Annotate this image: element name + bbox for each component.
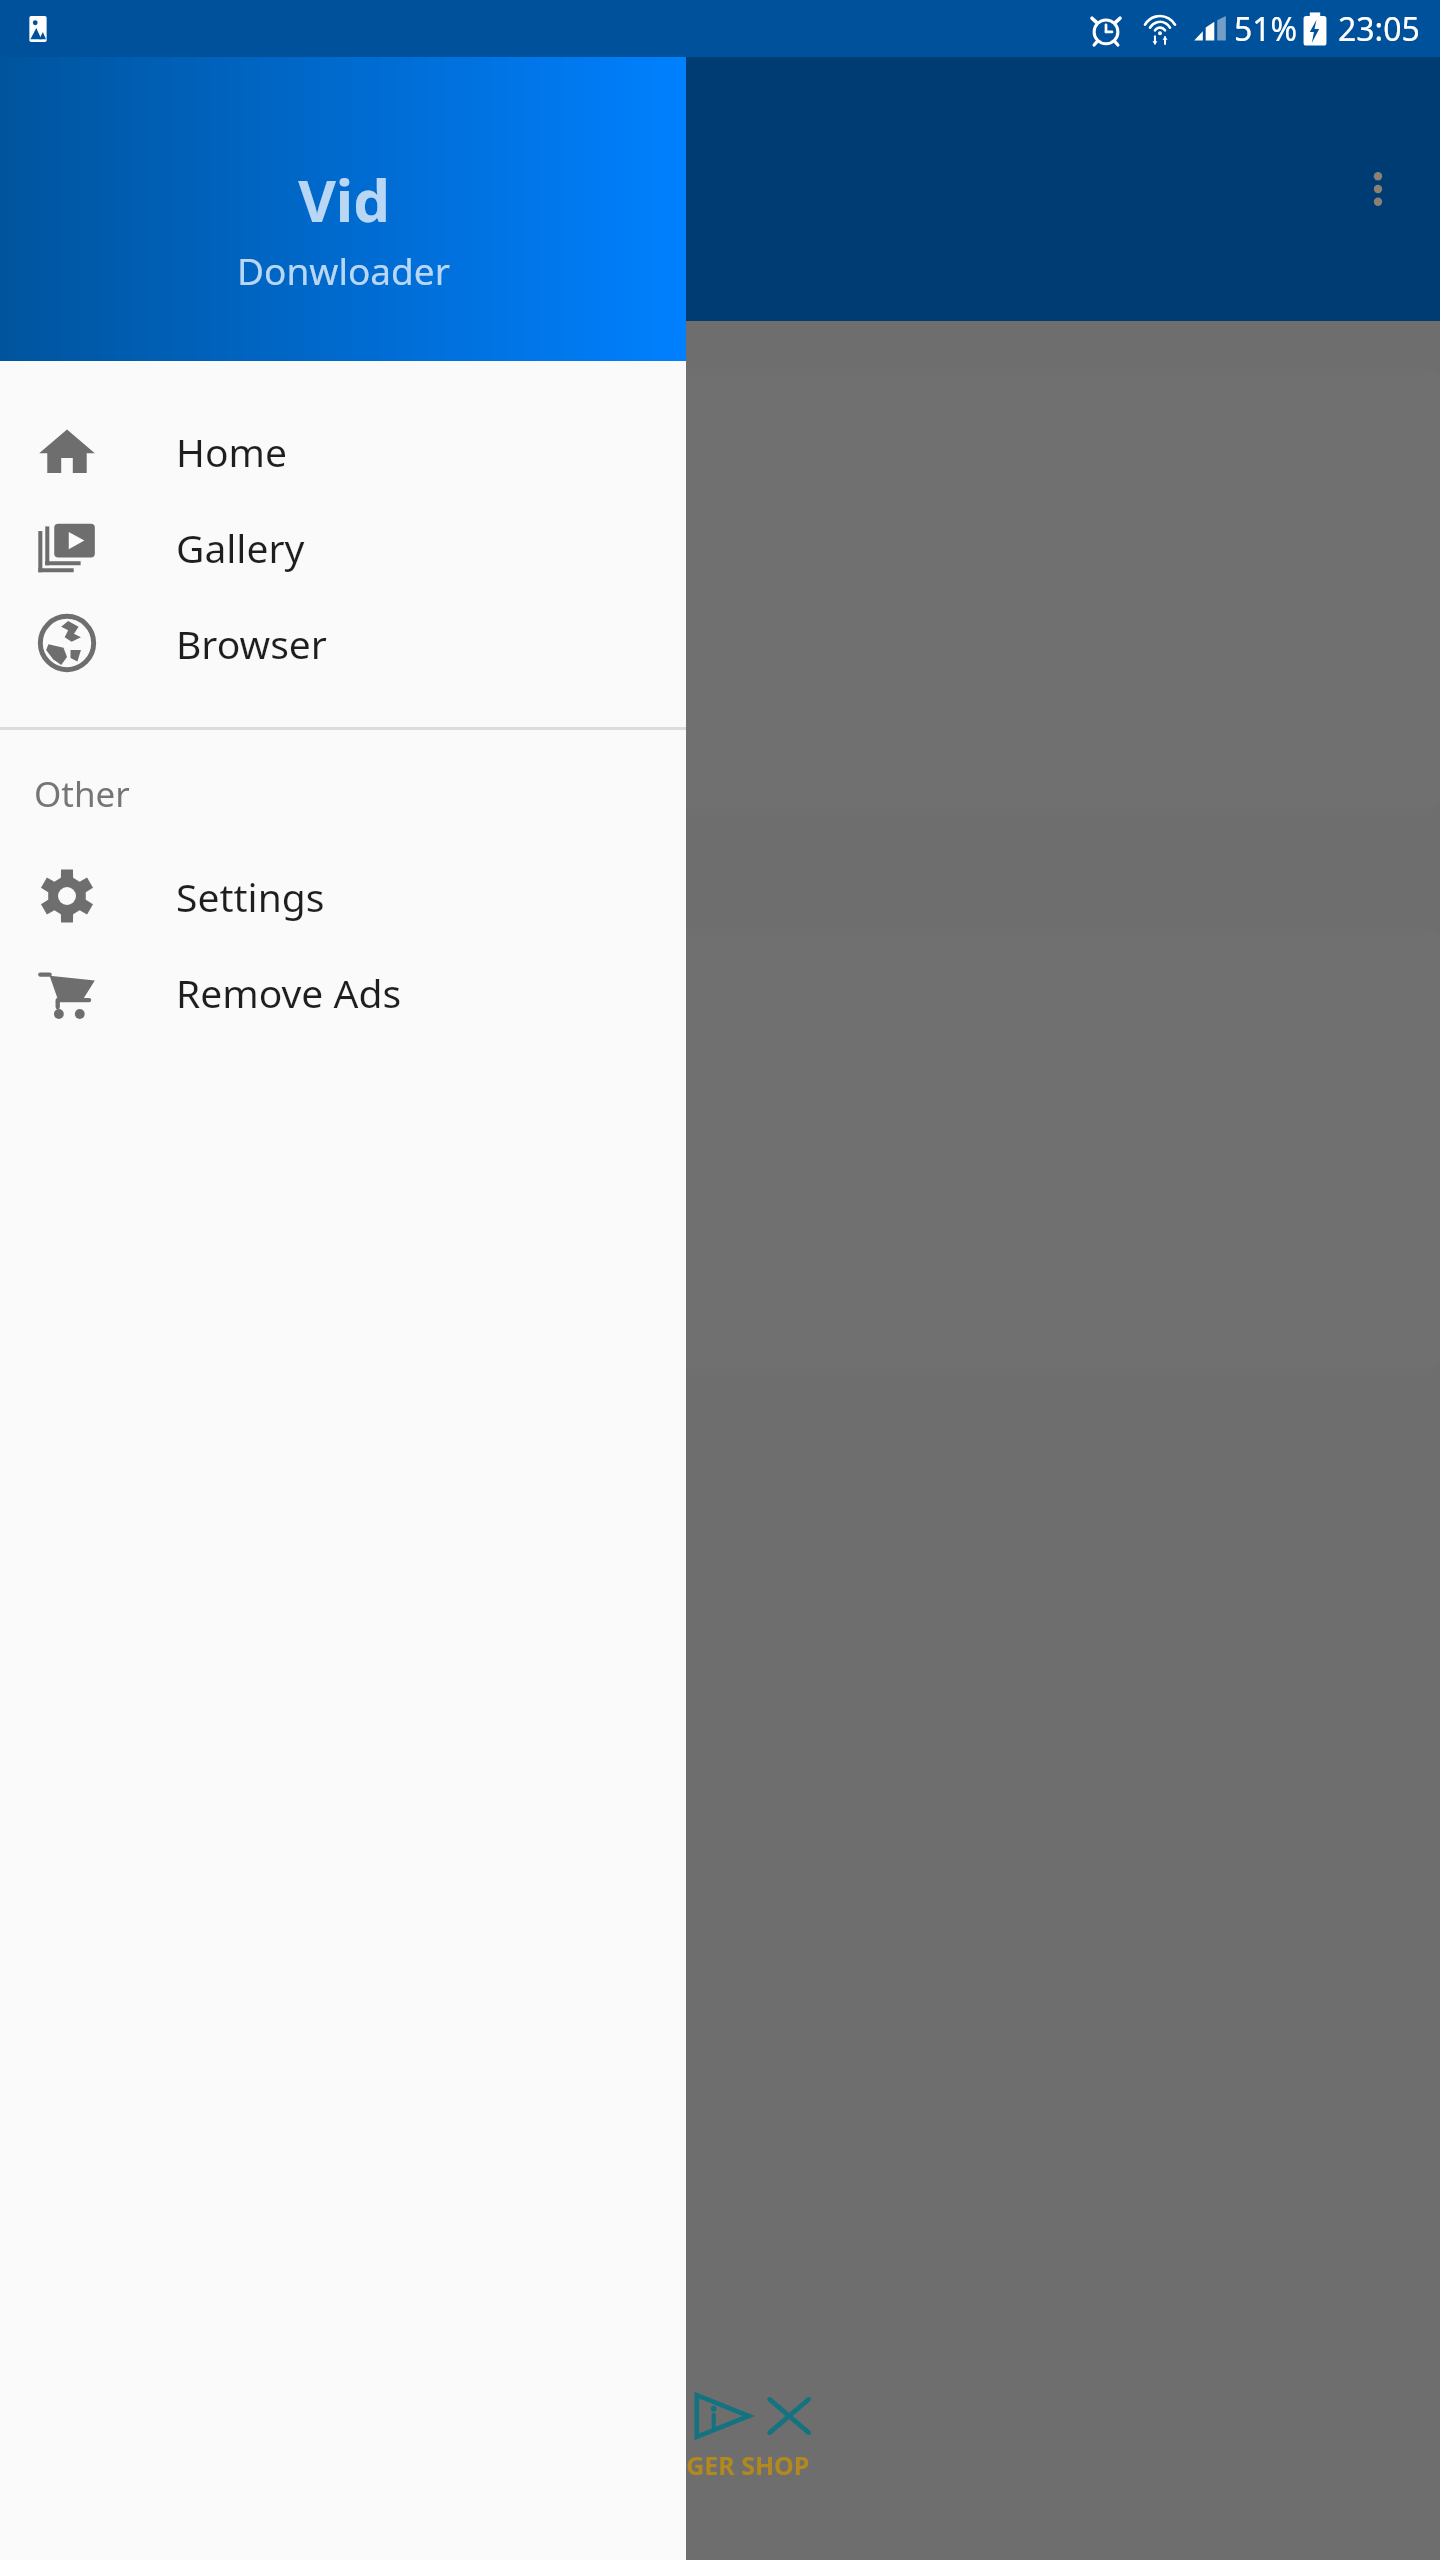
staticText: TIGER SHOP <box>662 2448 810 2482</box>
staticText: Settings <box>176 870 325 923</box>
button[interactable]: More options <box>1336 147 1420 231</box>
staticText: 23:05 <box>1338 7 1420 51</box>
button[interactable]: Browser <box>0 595 686 691</box>
staticText: Home <box>176 425 287 478</box>
staticText: Gallery <box>176 521 305 574</box>
button[interactable]: Open browser <box>376 693 520 837</box>
button[interactable]: Remove Ads <box>0 944 686 1040</box>
staticText: Gallery <box>52 459 194 513</box>
staticText: Vid <box>298 160 390 239</box>
staticText: Browser <box>176 617 327 670</box>
staticText: Other <box>34 770 130 818</box>
button[interactable]: Home <box>0 403 686 499</box>
staticText: Remove Ads <box>176 966 402 1019</box>
staticText: 51% <box>1234 7 1298 51</box>
staticText: Donwloader <box>237 245 450 295</box>
button[interactable]: Settings <box>0 848 686 944</box>
button[interactable]: Gallery <box>0 499 686 595</box>
